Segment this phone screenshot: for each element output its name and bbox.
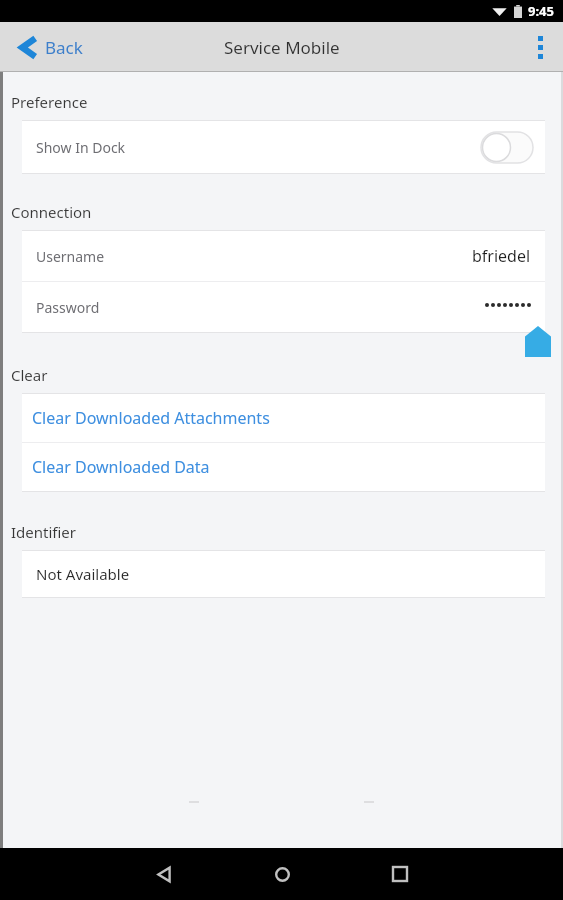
staticText: Username bbox=[36, 247, 105, 266]
button[interactable]: Clear Downloaded Attachments bbox=[22, 394, 545, 442]
button[interactable]: Password bbox=[22, 282, 545, 332]
button[interactable]: Home bbox=[246, 848, 318, 900]
staticText: 9:45 bbox=[528, 2, 554, 20]
staticText: Password bbox=[36, 298, 100, 317]
staticText: Preference bbox=[11, 92, 88, 112]
button[interactable]: Clear Downloaded Data bbox=[22, 443, 545, 491]
button[interactable]: More options bbox=[517, 22, 563, 72]
button[interactable]: Show In Dock bbox=[22, 121, 545, 173]
staticText: Identifier bbox=[11, 522, 77, 542]
staticText: Back bbox=[45, 36, 83, 59]
staticText: Show In Dock bbox=[36, 138, 126, 157]
button[interactable]: Show In Dock toggle bbox=[481, 132, 533, 163]
staticText: Clear bbox=[11, 365, 48, 385]
button[interactable]: Not Available bbox=[22, 551, 545, 597]
staticText: Clear Downloaded Data bbox=[32, 456, 210, 478]
button[interactable]: Back bbox=[0, 22, 103, 72]
staticText: Clear Downloaded Attachments bbox=[32, 407, 270, 429]
button[interactable]: Recent apps bbox=[364, 848, 436, 900]
staticText: Not Available bbox=[36, 564, 130, 584]
button[interactable]: Back bbox=[128, 848, 200, 900]
staticText: bfriedel bbox=[472, 245, 531, 267]
button[interactable]: Username bbox=[22, 231, 545, 281]
staticText: Connection bbox=[11, 202, 92, 222]
staticText: Service Mobile bbox=[224, 36, 340, 59]
